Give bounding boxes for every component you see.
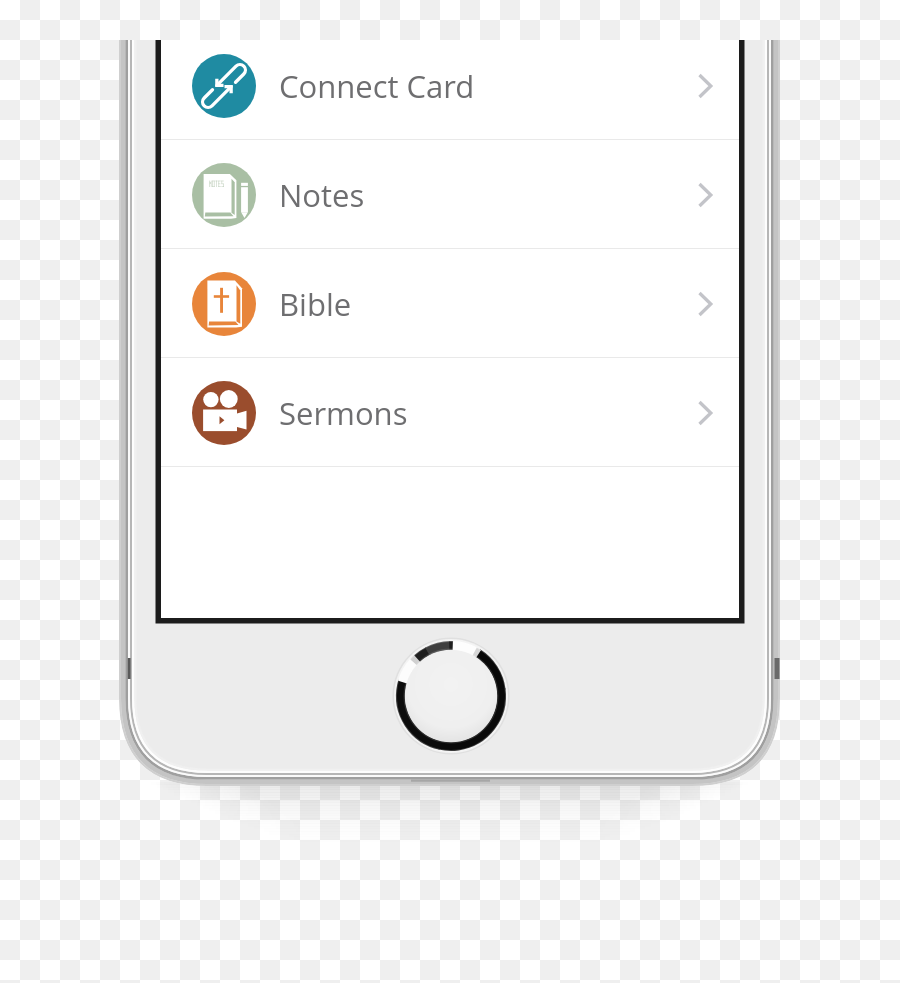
button[interactable]: Bible [161, 249, 739, 358]
button[interactable]: Connect Card [161, 40, 739, 140]
staticText: Connect Card [279, 65, 475, 107]
button[interactable]: Sermons [161, 358, 739, 467]
staticText: Sermons [279, 392, 408, 434]
staticText: Notes [279, 174, 365, 216]
staticText: Bible [279, 283, 352, 325]
button[interactable]: Notes [161, 140, 739, 249]
